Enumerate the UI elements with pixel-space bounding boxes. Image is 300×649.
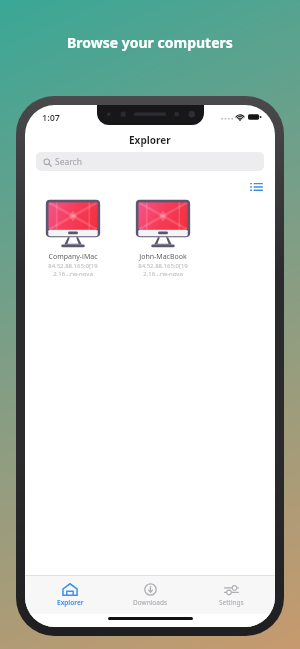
button[interactable]: Switch to list view — [248, 179, 264, 195]
staticText: Explorer — [129, 133, 171, 147]
button[interactable]: Downloads — [114, 576, 186, 614]
staticText: Browse your computers — [67, 33, 233, 52]
staticText: Explorer — [57, 598, 84, 607]
staticText: 84.52.88.165:0[19 — [138, 262, 188, 270]
staticText: 2.16...rw-nova — [143, 270, 183, 278]
button[interactable]: John-MacBook — [127, 199, 199, 278]
staticText: 2.16...rw-nova — [53, 270, 93, 278]
button[interactable]: Explorer — [34, 576, 106, 614]
staticText: Company-iMac — [48, 252, 98, 262]
staticText: Downloads — [133, 598, 168, 607]
staticText: 84.52.88.165:0[19 — [48, 262, 98, 270]
staticText: Settings — [219, 598, 244, 607]
staticText: Search — [55, 156, 82, 168]
button[interactable]: Company-iMac — [37, 199, 109, 278]
staticText: John-MacBook — [139, 252, 187, 262]
button[interactable]: Search — [36, 152, 264, 171]
button[interactable]: Settings — [195, 576, 267, 614]
staticText: 1:07 — [42, 111, 60, 123]
